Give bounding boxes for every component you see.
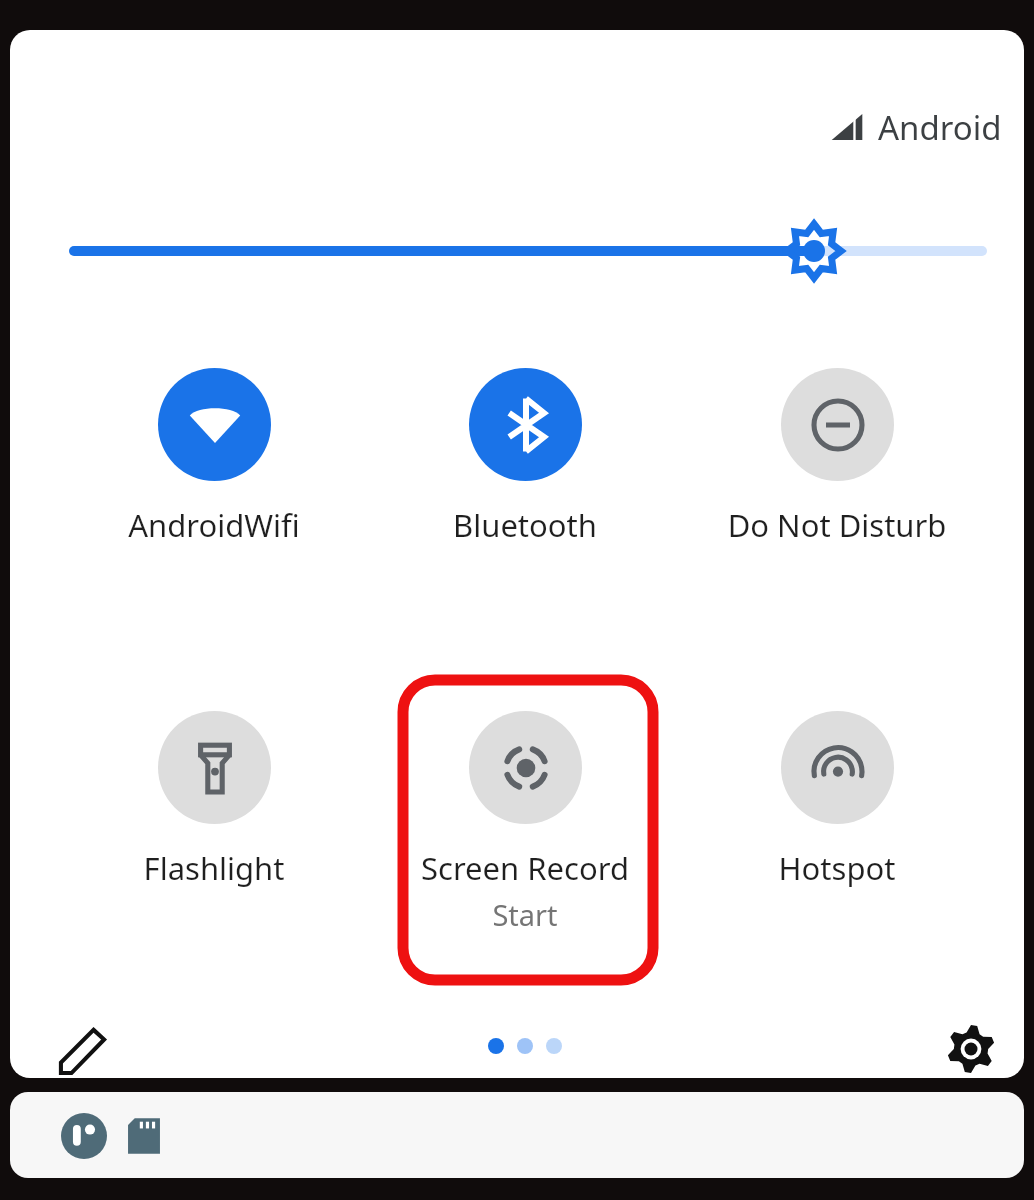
staticText: Screen Record xyxy=(375,847,675,889)
button[interactable]: Settings xyxy=(938,1016,1004,1078)
button[interactable]: SD card xyxy=(118,1110,170,1162)
button[interactable]: Edit tiles xyxy=(50,1018,116,1078)
staticText: Hotspot xyxy=(687,847,987,889)
staticText: Do Not Disturb xyxy=(687,504,987,546)
button[interactable]: AndroidWifi xyxy=(64,368,364,546)
staticText: AndroidWifi xyxy=(64,504,364,546)
button[interactable]: Flashlight xyxy=(64,711,364,889)
button[interactable]: Bluetooth xyxy=(375,368,675,546)
staticText: Start xyxy=(375,895,675,934)
button[interactable]: Hotspot xyxy=(687,711,987,889)
button[interactable]: App shortcut xyxy=(58,1110,110,1162)
staticText: Bluetooth xyxy=(375,504,675,546)
staticText: Android xyxy=(878,105,1002,150)
button[interactable]: Screen Record xyxy=(375,711,675,934)
staticText: Flashlight xyxy=(64,847,364,889)
button[interactable]: Do Not Disturb xyxy=(687,368,987,546)
